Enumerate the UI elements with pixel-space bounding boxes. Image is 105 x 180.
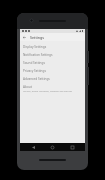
button[interactable]: Sound Settings <box>20 59 85 67</box>
staticText: Advanced Settings <box>23 77 50 81</box>
button[interactable]: Advanced Settings <box>20 75 85 83</box>
staticText: Privacy Settings <box>23 69 46 73</box>
staticText: Display Settings <box>23 45 47 49</box>
staticText: Version, device hardware, software and l… <box>23 90 72 93</box>
staticText: Notification Settings <box>23 53 53 57</box>
button[interactable]: Recent apps <box>66 143 79 151</box>
button[interactable]: About <box>20 83 85 95</box>
staticText: Settings <box>30 35 44 40</box>
button[interactable]: Back <box>27 143 40 151</box>
staticText: Sound Settings <box>23 61 45 65</box>
button[interactable]: Navigate up <box>20 33 28 41</box>
button[interactable]: Privacy Settings <box>20 67 85 75</box>
button[interactable]: Home <box>46 143 59 151</box>
staticText: About <box>23 85 32 89</box>
button[interactable]: Display Settings <box>20 43 85 51</box>
button[interactable]: Notification Settings <box>20 51 85 59</box>
